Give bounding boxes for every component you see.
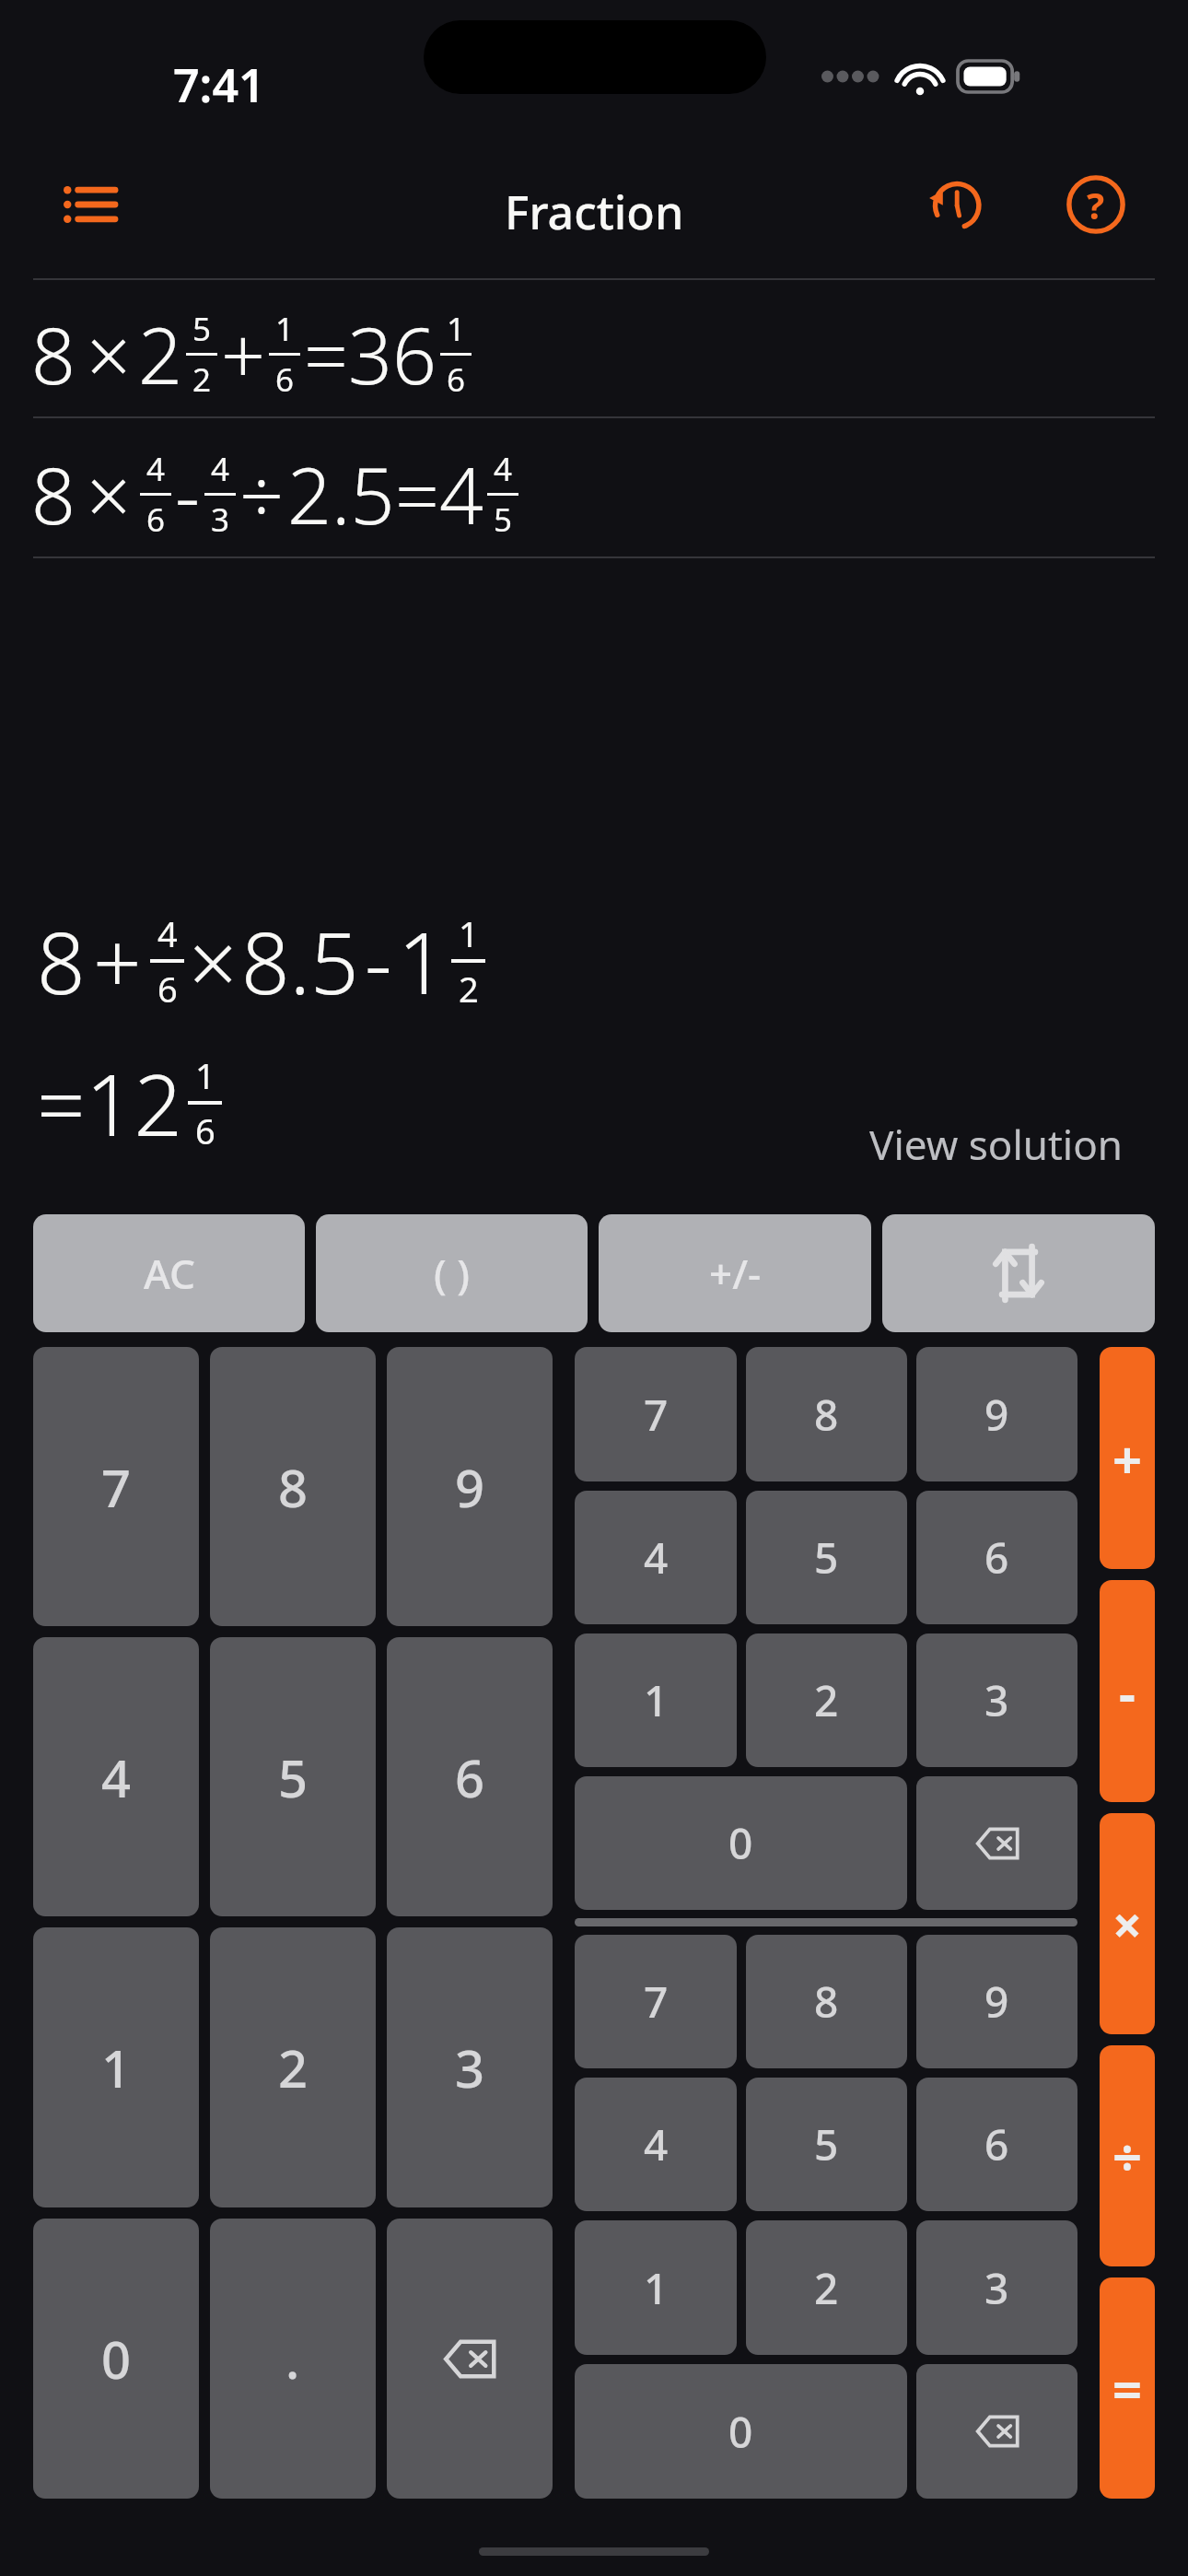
button[interactable]: 5 — [210, 1637, 376, 1916]
staticText: 36 — [348, 301, 437, 406]
button[interactable]: 2 — [210, 1927, 376, 2207]
button[interactable]: 4 — [575, 2078, 737, 2211]
staticText: 1 — [101, 2032, 132, 2102]
button[interactable]: 4 — [33, 1637, 199, 1916]
button[interactable]: × — [1100, 1813, 1155, 2034]
button[interactable]: 3 — [916, 1633, 1077, 1767]
staticText: = — [395, 441, 439, 546]
button[interactable]: 9 — [387, 1347, 553, 1626]
staticText: 4 — [644, 1528, 669, 1587]
button[interactable]: 8 — [746, 1935, 907, 2068]
staticText: 4 — [146, 447, 166, 491]
staticText: 0 — [101, 2324, 132, 2394]
staticText: 9 — [455, 1452, 485, 1522]
staticText: 8 — [31, 441, 76, 546]
staticText: - — [365, 904, 392, 1019]
button[interactable]: 1 — [575, 1633, 737, 1767]
button[interactable]: 7 — [33, 1347, 199, 1626]
button[interactable]: Menu — [46, 161, 133, 248]
button[interactable]: + — [1100, 1347, 1155, 1569]
staticText: 1 — [195, 1051, 215, 1099]
staticText: 8.5 — [241, 904, 359, 1019]
button[interactable]: 7 — [575, 1347, 737, 1481]
staticText: 0 — [728, 2403, 753, 2461]
staticText: 3 — [984, 1671, 1009, 1729]
staticText: 3 — [455, 2032, 485, 2102]
button[interactable]: Swap — [882, 1214, 1155, 1332]
staticText: ( ) — [434, 1246, 470, 1301]
button[interactable]: Delete — [916, 1776, 1077, 1910]
staticText: - — [175, 441, 201, 546]
staticText: 6 — [195, 1107, 215, 1154]
button[interactable]: 0 — [575, 2364, 907, 2499]
button[interactable]: View solution — [869, 1117, 1123, 1172]
button[interactable]: 6 — [916, 1491, 1077, 1624]
staticText: 1 — [459, 909, 479, 957]
button[interactable]: 5 — [746, 1491, 907, 1624]
staticText: × — [1112, 1889, 1143, 1959]
button[interactable]: 1 — [33, 1927, 199, 2207]
button[interactable]: 3 — [387, 1927, 553, 2207]
staticText: 2.5 — [287, 441, 395, 546]
button[interactable]: History — [912, 162, 996, 247]
staticText: ÷ — [239, 441, 284, 546]
staticText: 6 — [275, 357, 295, 402]
button[interactable]: - — [1100, 1580, 1155, 1802]
staticText: 4 — [494, 447, 513, 491]
staticText: 8 — [37, 904, 86, 1019]
staticText: 2 — [814, 2259, 839, 2317]
button[interactable]: 5 — [746, 2078, 907, 2211]
button[interactable]: = — [1100, 2277, 1155, 2499]
button[interactable]: 8 — [746, 1347, 907, 1481]
staticText: 8 — [278, 1452, 309, 1522]
button[interactable]: 6 — [387, 1637, 553, 1916]
staticText: 4 — [644, 2115, 669, 2173]
button[interactable]: 3 — [916, 2220, 1077, 2355]
staticText: 9 — [984, 1973, 1009, 2031]
button[interactable]: Delete — [387, 2219, 553, 2499]
staticText: × — [189, 904, 238, 1019]
button[interactable]: . — [210, 2219, 376, 2499]
staticText: 1 — [398, 904, 447, 1019]
staticText: 2 — [814, 1671, 839, 1729]
staticText: × — [87, 441, 131, 546]
staticText: 7 — [101, 1452, 132, 1522]
staticText: 0 — [728, 1814, 753, 1872]
button[interactable]: 7 — [575, 1935, 737, 2068]
staticText: 1 — [447, 307, 466, 351]
button[interactable]: Help — [1054, 162, 1138, 247]
staticText: AC — [144, 1246, 195, 1301]
staticText: Fraction — [505, 181, 684, 243]
staticText: 5 — [192, 307, 212, 351]
staticText: 2 — [192, 357, 212, 402]
staticText: 7 — [644, 1973, 669, 2031]
button[interactable]: AC — [33, 1214, 305, 1332]
button[interactable]: 6 — [916, 2078, 1077, 2211]
button[interactable]: ( ) — [316, 1214, 588, 1332]
button[interactable]: 8 — [210, 1347, 376, 1626]
button[interactable]: 4 — [575, 1491, 737, 1624]
button[interactable]: 0 — [575, 1776, 907, 1910]
button[interactable]: 2 — [746, 1633, 907, 1767]
staticText: ? — [1087, 180, 1105, 229]
staticText: 7 — [644, 1386, 669, 1444]
staticText: +/- — [709, 1246, 762, 1301]
button[interactable]: 9 — [916, 1935, 1077, 2068]
button[interactable]: 1 — [575, 2220, 737, 2355]
button[interactable]: 0 — [33, 2219, 199, 2499]
staticText: 4 — [157, 909, 178, 957]
staticText: 6 — [157, 965, 178, 1013]
staticText: + — [221, 301, 265, 406]
button[interactable]: 8 — [31, 293, 1188, 415]
button[interactable]: Delete — [916, 2364, 1077, 2499]
button[interactable]: 8 — [31, 433, 1188, 555]
staticText: 4 — [211, 447, 230, 491]
button[interactable]: 9 — [916, 1347, 1077, 1481]
button[interactable]: 2 — [746, 2220, 907, 2355]
staticText: × — [87, 301, 131, 406]
staticText: + — [1112, 1423, 1143, 1493]
staticText: 8 — [31, 301, 76, 406]
button[interactable]: +/- — [599, 1214, 871, 1332]
staticText: 6 — [455, 1742, 485, 1812]
button[interactable]: ÷ — [1100, 2045, 1155, 2266]
